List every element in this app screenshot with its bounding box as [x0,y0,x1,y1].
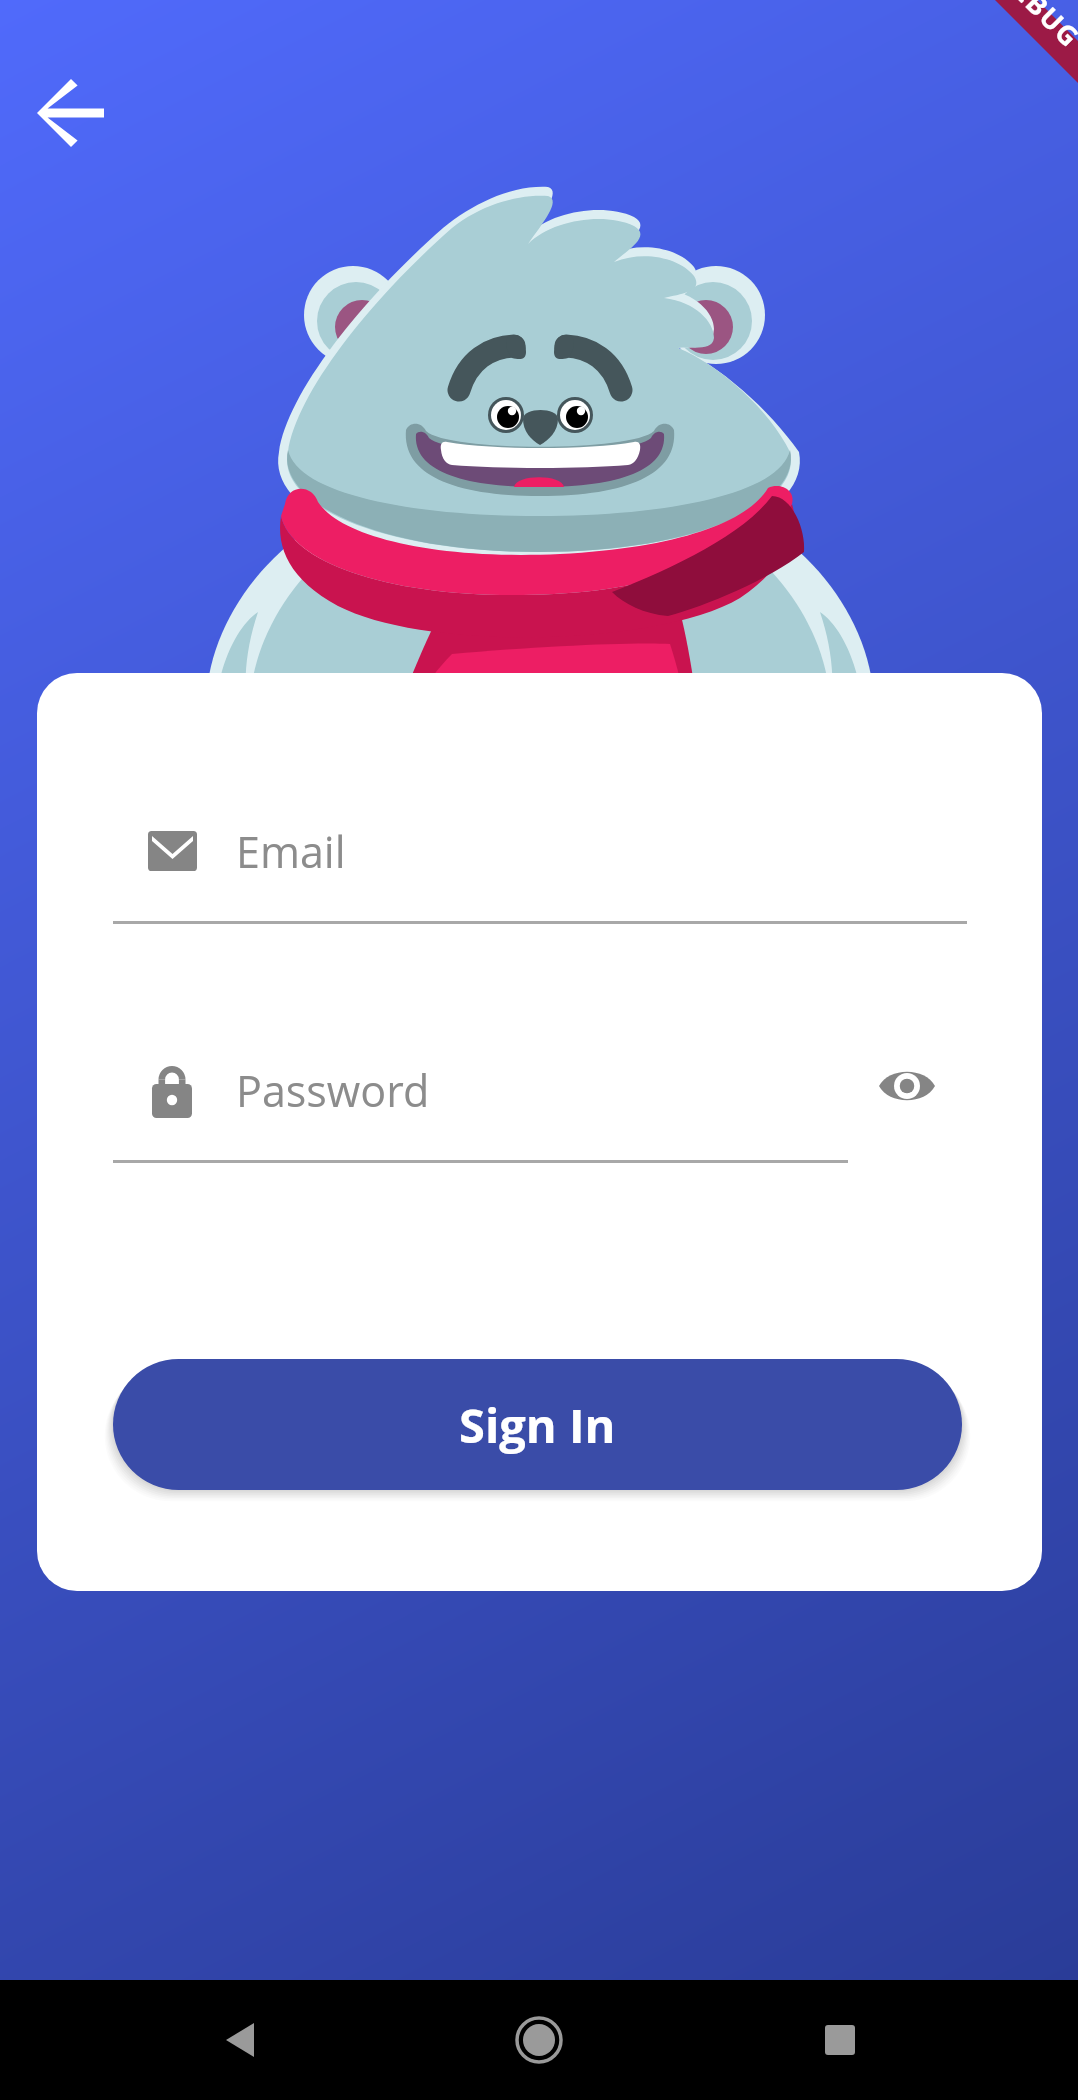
staticText: Password [236,1061,430,1120]
staticText: Email [236,822,346,881]
staticText: Sign In [459,1393,616,1457]
button[interactable]: Email [113,801,967,924]
button[interactable]: Sign In [113,1359,962,1490]
staticText: DEBUG [991,0,1078,55]
button[interactable]: Password [113,1040,848,1163]
button[interactable]: Back [17,60,123,166]
button[interactable]: Show password [855,1037,959,1135]
